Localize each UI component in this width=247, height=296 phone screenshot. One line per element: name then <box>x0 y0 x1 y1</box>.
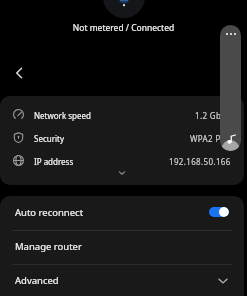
button[interactable]: Manage router <box>0 230 244 264</box>
button[interactable]: Back <box>5 59 33 87</box>
button[interactable]: Security <box>0 126 244 149</box>
button[interactable]: Advanced <box>0 264 244 296</box>
staticText: Security <box>34 133 65 144</box>
button[interactable]: Volume <box>220 25 241 151</box>
staticText: Network speed <box>34 110 91 121</box>
staticText: Manage router <box>15 240 82 253</box>
button[interactable]: Network speed <box>0 103 244 126</box>
staticText: IP address <box>34 156 74 167</box>
button[interactable]: IP address <box>0 149 244 172</box>
button[interactable]: Auto reconnect <box>0 196 244 230</box>
button[interactable]: Show more <box>0 166 244 180</box>
staticText: 1.2 Gbps <box>195 110 231 121</box>
staticText: WPA2 PSK <box>190 133 231 144</box>
staticText: Advanced <box>15 274 59 287</box>
staticText: Not metered / Connected <box>0 22 247 34</box>
staticText: Auto reconnect <box>15 206 84 219</box>
staticText: 192.168.50.166 <box>169 156 231 167</box>
